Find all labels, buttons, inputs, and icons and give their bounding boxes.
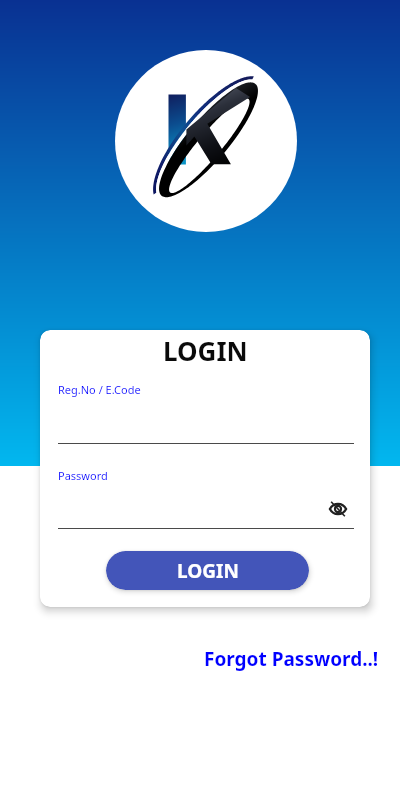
staticText: Password [58, 468, 108, 483]
staticText: LOGIN [177, 558, 239, 584]
button[interactable]: LOGIN [106, 551, 309, 590]
staticText: LOGIN [163, 333, 248, 368]
button[interactable]: Forgot Password..! [204, 646, 379, 672]
staticText: Reg.No / E.Code [58, 382, 141, 397]
button[interactable]: Show password [326, 497, 350, 521]
